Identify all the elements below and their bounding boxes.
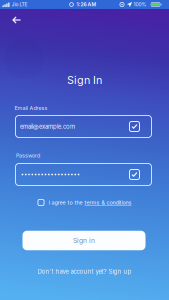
button[interactable]: Password [15, 163, 152, 186]
staticText: 1:26 AM [76, 1, 96, 7]
staticText: 100% [133, 1, 146, 7]
staticText: I agree to the terms & conditions [48, 199, 131, 206]
button[interactable]: Back [9, 13, 23, 27]
staticText: Password [16, 152, 40, 159]
staticText: Jio LTE [11, 1, 27, 7]
button[interactable]: Email Adress [15, 115, 152, 138]
staticText: Sign in [73, 236, 95, 245]
staticText: email@example.com [20, 123, 75, 130]
staticText: Don't have account yet? Sign up [37, 268, 131, 275]
button[interactable]: Don't have account yet? Sign up [37, 268, 131, 275]
staticText: Email Adress [14, 105, 47, 111]
button[interactable]: I agree to the terms & conditions [37, 199, 131, 206]
staticText: Sign In [67, 73, 102, 87]
button[interactable]: Sign in [22, 231, 145, 250]
